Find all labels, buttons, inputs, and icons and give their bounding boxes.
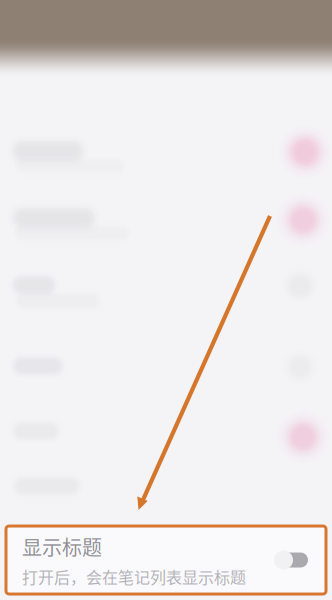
staticText: 显示标题 [22, 532, 102, 561]
staticText: 打开后，会在笔记列表显示标题 [22, 565, 246, 588]
button[interactable]: 显示标题 [6, 526, 326, 594]
